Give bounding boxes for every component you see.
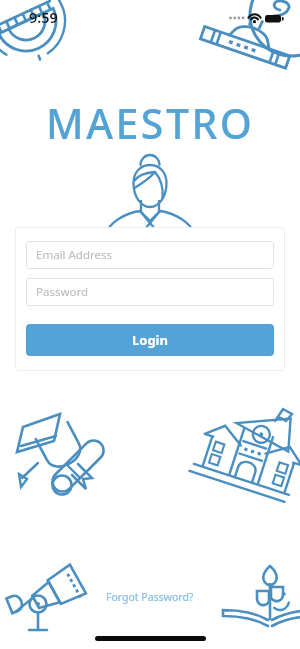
button[interactable]: Login	[26, 324, 274, 356]
staticText: Email Address	[36, 247, 113, 263]
staticText: Password	[36, 284, 89, 300]
staticText: 9:59	[29, 7, 58, 27]
staticText: MAESTRO	[46, 95, 255, 151]
button[interactable]: Forgot Password?	[100, 587, 200, 607]
button[interactable]: Email Address	[26, 241, 274, 269]
staticText: Forgot Password?	[106, 590, 194, 604]
staticText: Login	[132, 331, 168, 349]
button[interactable]: Password	[26, 278, 274, 306]
